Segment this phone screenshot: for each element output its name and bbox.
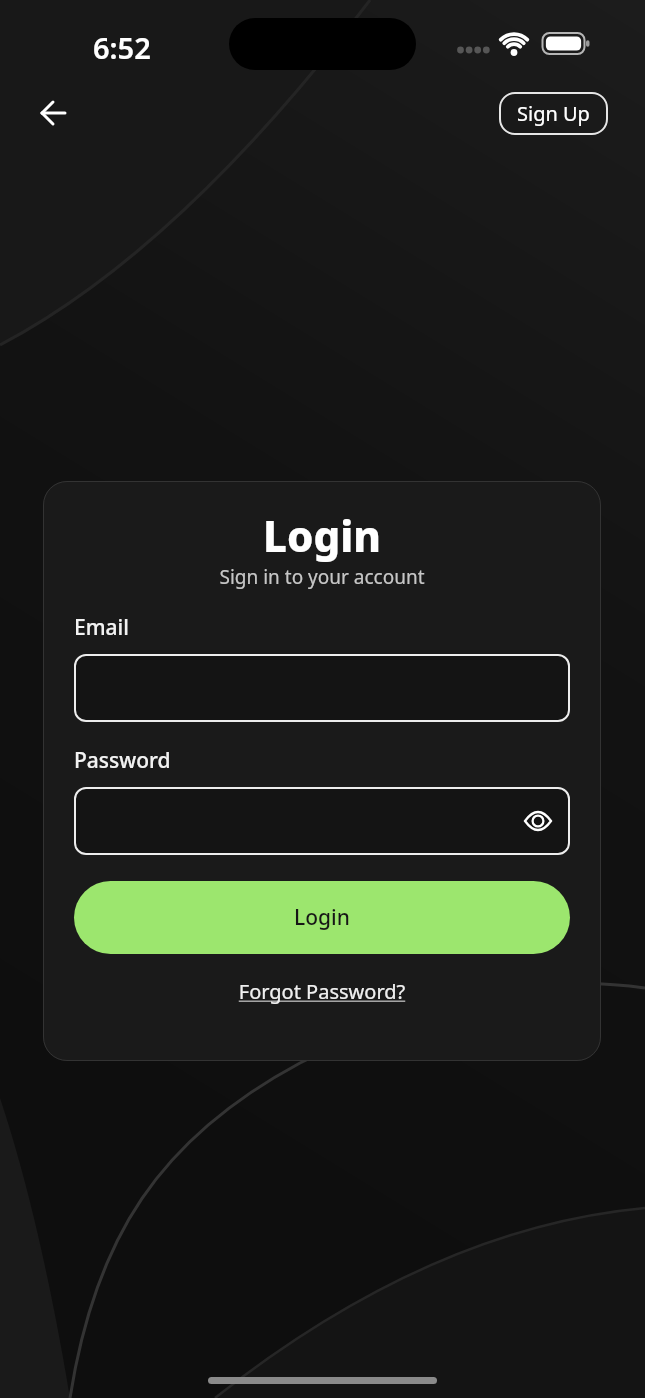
staticText: Email	[74, 613, 129, 642]
button[interactable]: Sign Up	[499, 92, 608, 135]
button[interactable]: Login	[74, 881, 570, 954]
staticText: Sign in to your account	[74, 564, 570, 590]
staticText: Password	[74, 746, 171, 775]
staticText: Sign Up	[517, 100, 590, 127]
button[interactable]	[30, 89, 78, 137]
button[interactable]: Forgot Password?	[74, 978, 570, 1005]
staticText: Login	[294, 903, 350, 932]
button[interactable]	[74, 787, 570, 855]
staticText: Login	[74, 507, 570, 564]
button[interactable]	[74, 654, 570, 722]
staticText: 6:52	[93, 28, 151, 67]
